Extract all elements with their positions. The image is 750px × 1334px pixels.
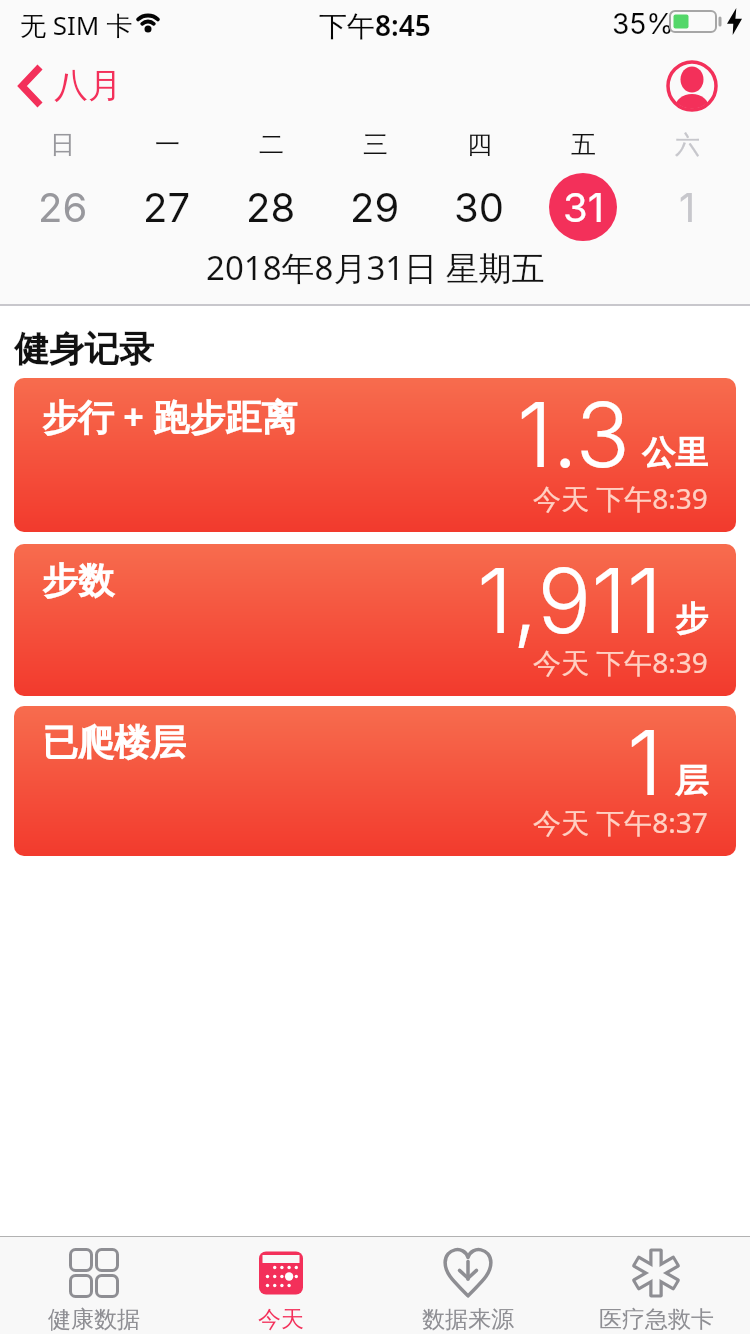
staticText: 已爬楼层 [42,720,186,765]
button[interactable]: 步数 [14,544,736,696]
button[interactable]: 今天 [187,1236,374,1334]
staticText: 三 [363,129,388,160]
staticText: 26 [38,183,88,231]
staticText: 27 [143,183,191,231]
staticText: 公里 [642,432,708,474]
staticText: 下午8:45 [319,6,431,44]
button[interactable]: 31 [531,173,635,241]
button[interactable] [666,60,718,112]
staticText: 1 [627,708,663,817]
button[interactable]: 26 [10,173,115,241]
staticText: 28 [246,183,296,231]
staticText: 数据来源 [422,1305,514,1334]
staticText: 1,911 [477,546,663,655]
staticText: 层 [675,760,708,802]
staticText: 日 [50,129,75,160]
button[interactable]: 28 [219,173,323,241]
staticText: 步行 + 跑步距离 [42,392,298,441]
staticText: 一 [155,129,180,160]
staticText: 30 [454,183,504,231]
staticText: 无 SIM 卡 [20,7,133,43]
staticText: 步 [675,598,708,640]
staticText: 2018年8月31日 星期五 [206,245,545,290]
staticText: 步数 [42,558,114,603]
staticText: 今天 下午8:37 [533,803,708,841]
staticText: 四 [467,129,492,160]
staticText: 健康数据 [48,1305,140,1334]
button[interactable]: 30 [427,173,531,241]
staticText: 六 [675,129,700,160]
button[interactable]: 步行 + 跑步距离 [14,378,736,532]
button[interactable]: 29 [323,173,427,241]
staticText: 31 [563,183,604,231]
staticText: 二 [259,129,284,160]
staticText: 今天 下午8:39 [533,479,708,517]
button[interactable]: 已爬楼层 [14,706,736,856]
staticText: 医疗急救卡 [599,1305,714,1334]
staticText: 1.3 [517,380,630,489]
staticText: 健身记录 [14,327,154,371]
staticText: 29 [350,183,400,231]
button[interactable]: 健康数据 [0,1236,187,1334]
staticText: 今天 下午8:39 [533,643,708,681]
button[interactable]: 27 [115,173,219,241]
staticText: 五 [571,129,596,160]
staticText: 今天 [258,1305,304,1334]
button[interactable]: 八月 [10,56,140,114]
button[interactable]: 医疗急救卡 [562,1236,750,1334]
staticText: 1 [679,183,696,231]
button[interactable]: 1 [635,173,739,241]
staticText: 八月 [54,64,122,107]
staticText: 35% [612,7,674,41]
button[interactable]: 数据来源 [374,1236,562,1334]
